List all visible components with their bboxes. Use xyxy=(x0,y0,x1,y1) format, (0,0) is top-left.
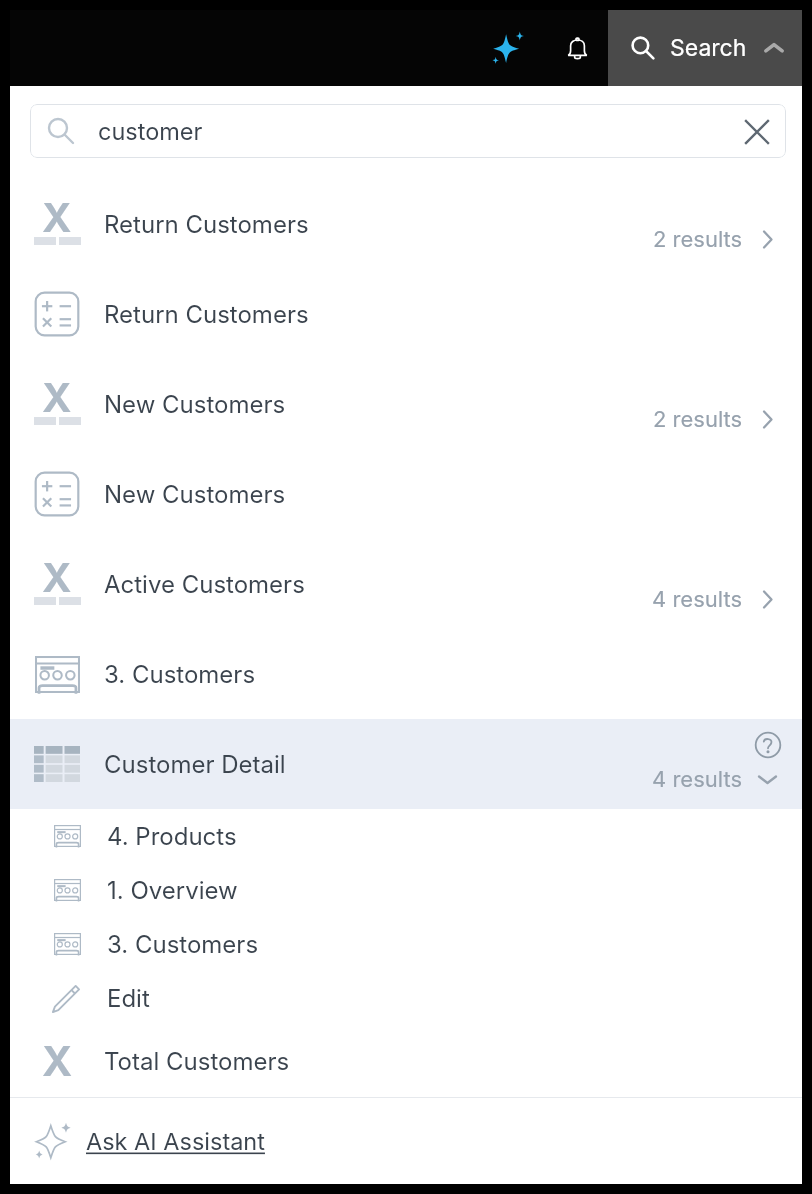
staticText: X xyxy=(42,373,72,421)
button[interactable]: 4 results xyxy=(652,766,780,793)
button[interactable]: Help xyxy=(753,730,783,760)
button[interactable]: 4 results xyxy=(652,586,780,613)
staticText: customer xyxy=(98,117,203,145)
staticText: 3. Customers xyxy=(104,660,256,689)
staticText: 4. Products xyxy=(107,822,237,851)
button[interactable]: 1. Overview xyxy=(10,863,802,917)
button[interactable]: 4. Products xyxy=(10,809,802,863)
staticText: X xyxy=(42,1036,73,1086)
staticText: Edit xyxy=(107,984,150,1013)
staticText: Total Customers xyxy=(104,1047,290,1076)
staticText: Ask AI Assistant xyxy=(86,1127,265,1155)
button[interactable]: Ask AI Assistant xyxy=(10,1098,802,1184)
staticText: 2 results xyxy=(653,226,743,253)
staticText: Search xyxy=(670,34,747,62)
button[interactable]: Return Customers xyxy=(10,269,802,359)
staticText: New Customers xyxy=(104,480,286,509)
button[interactable]: 2 results xyxy=(653,406,780,433)
button[interactable]: X xyxy=(10,1025,802,1097)
staticText: 4 results xyxy=(652,586,743,613)
button[interactable]: Notifications xyxy=(540,10,608,86)
button[interactable]: X xyxy=(10,539,802,629)
staticText: 1. Overview xyxy=(107,876,238,905)
staticText: Customer Detail xyxy=(104,750,286,779)
staticText: 3. Customers xyxy=(107,930,259,959)
staticText: New Customers xyxy=(104,390,286,419)
button[interactable]: Search xyxy=(608,10,802,86)
button[interactable]: 3. Customers xyxy=(10,629,802,719)
staticText: X xyxy=(42,553,72,601)
staticText: 2 results xyxy=(653,406,743,433)
button[interactable]: 2 results xyxy=(653,226,780,253)
button[interactable]: 3. Customers xyxy=(10,917,802,971)
staticText: Return Customers xyxy=(104,300,309,329)
button[interactable]: X xyxy=(10,179,802,269)
button[interactable]: Clear search xyxy=(735,109,779,153)
button[interactable]: Edit xyxy=(10,971,802,1025)
button[interactable]: New Customers xyxy=(10,449,802,539)
button[interactable]: X xyxy=(10,359,802,449)
button[interactable]: Customer Detail xyxy=(10,719,802,809)
button[interactable]: AI Assistant xyxy=(470,10,540,86)
staticText: 4 results xyxy=(652,766,743,793)
staticText: X xyxy=(42,193,72,241)
staticText: Active Customers xyxy=(104,570,305,599)
staticText: Return Customers xyxy=(104,210,309,239)
button[interactable]: customer xyxy=(30,104,786,158)
